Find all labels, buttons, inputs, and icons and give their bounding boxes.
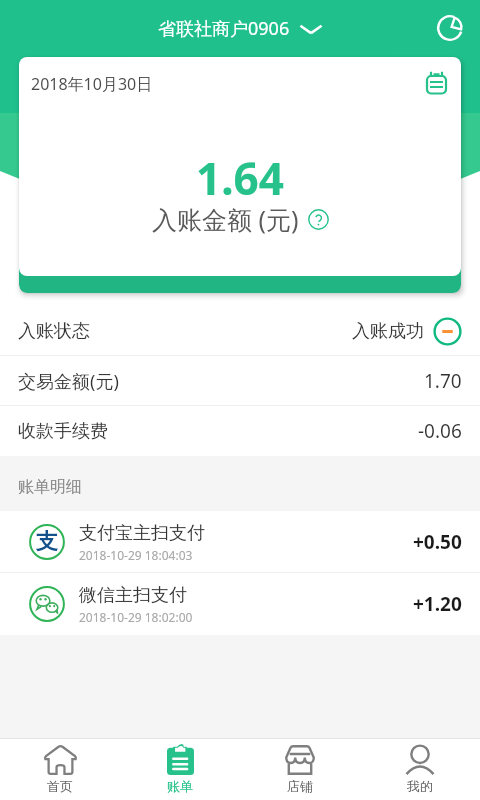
button[interactable]: 店铺 [240, 739, 360, 800]
staticText: 账单 [167, 778, 193, 794]
staticText: 支付宝主扫支付 [79, 522, 205, 545]
staticText: 入账成功 [352, 320, 424, 343]
staticText: -0.06 [418, 418, 462, 444]
staticText: 收款手续费 [18, 420, 108, 443]
staticText: 账单明细 [18, 477, 82, 497]
staticText: 首页 [47, 778, 73, 794]
staticText: 2018年10月30日 [31, 73, 153, 95]
staticText: 1.70 [424, 368, 462, 394]
button[interactable]: 收款手续费 [0, 406, 480, 456]
staticText: 入账状态 [18, 320, 90, 343]
button[interactable]: 微信主扫支付 [0, 573, 480, 635]
button[interactable]: Help [308, 209, 329, 230]
staticText: 省联社商户0906 [158, 16, 290, 41]
button[interactable]: Select date [424, 71, 449, 96]
staticText: 微信主扫支付 [79, 584, 187, 607]
staticText: 支 [36, 528, 58, 556]
button[interactable]: 支 [0, 511, 480, 573]
staticText: 2018-10-29 18:02:00 [79, 609, 193, 625]
staticText: 店铺 [287, 778, 313, 794]
button[interactable]: 入账状态 [0, 306, 480, 356]
staticText: 我的 [407, 778, 433, 794]
button[interactable]: 首页 [0, 739, 120, 800]
staticText: +1.20 [413, 591, 462, 617]
staticText: +0.50 [413, 529, 462, 555]
staticText: 入账金额 (元) [152, 202, 299, 236]
staticText: 交易金额(元) [18, 369, 119, 394]
button[interactable]: 省联社商户0906 [158, 16, 323, 41]
button[interactable]: Statistics [420, 0, 480, 56]
button[interactable]: 交易金额(元) [0, 356, 480, 406]
staticText: 2018-10-29 18:04:03 [79, 547, 193, 563]
button[interactable]: 账单 [120, 739, 240, 800]
button[interactable]: 我的 [360, 739, 480, 800]
staticText: 1.64 [196, 148, 284, 208]
